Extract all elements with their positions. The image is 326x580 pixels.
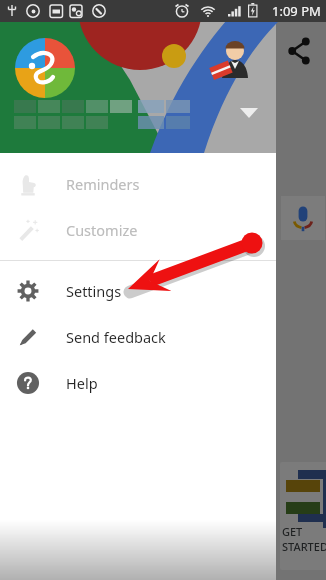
button[interactable]: Reminders: [0, 161, 276, 207]
staticText: Customize: [66, 220, 138, 240]
button[interactable]: Share: [282, 34, 316, 68]
staticText: Reminders: [66, 174, 140, 194]
button[interactable]: Account: [0, 0, 276, 153]
button[interactable]: Voice search: [281, 196, 325, 240]
staticText: Settings: [66, 281, 122, 301]
button[interactable]: Customize: [0, 207, 276, 253]
button[interactable]: Settings: [0, 268, 276, 314]
button[interactable]: Help: [0, 360, 276, 406]
staticText: GET STARTED: [282, 524, 326, 554]
staticText: Send feedback: [66, 327, 166, 347]
staticText: Help: [66, 373, 98, 393]
button[interactable]: GET STARTED: [280, 462, 326, 570]
staticText: 1:09 PM: [272, 2, 321, 20]
button[interactable]: Send feedback: [0, 314, 276, 360]
